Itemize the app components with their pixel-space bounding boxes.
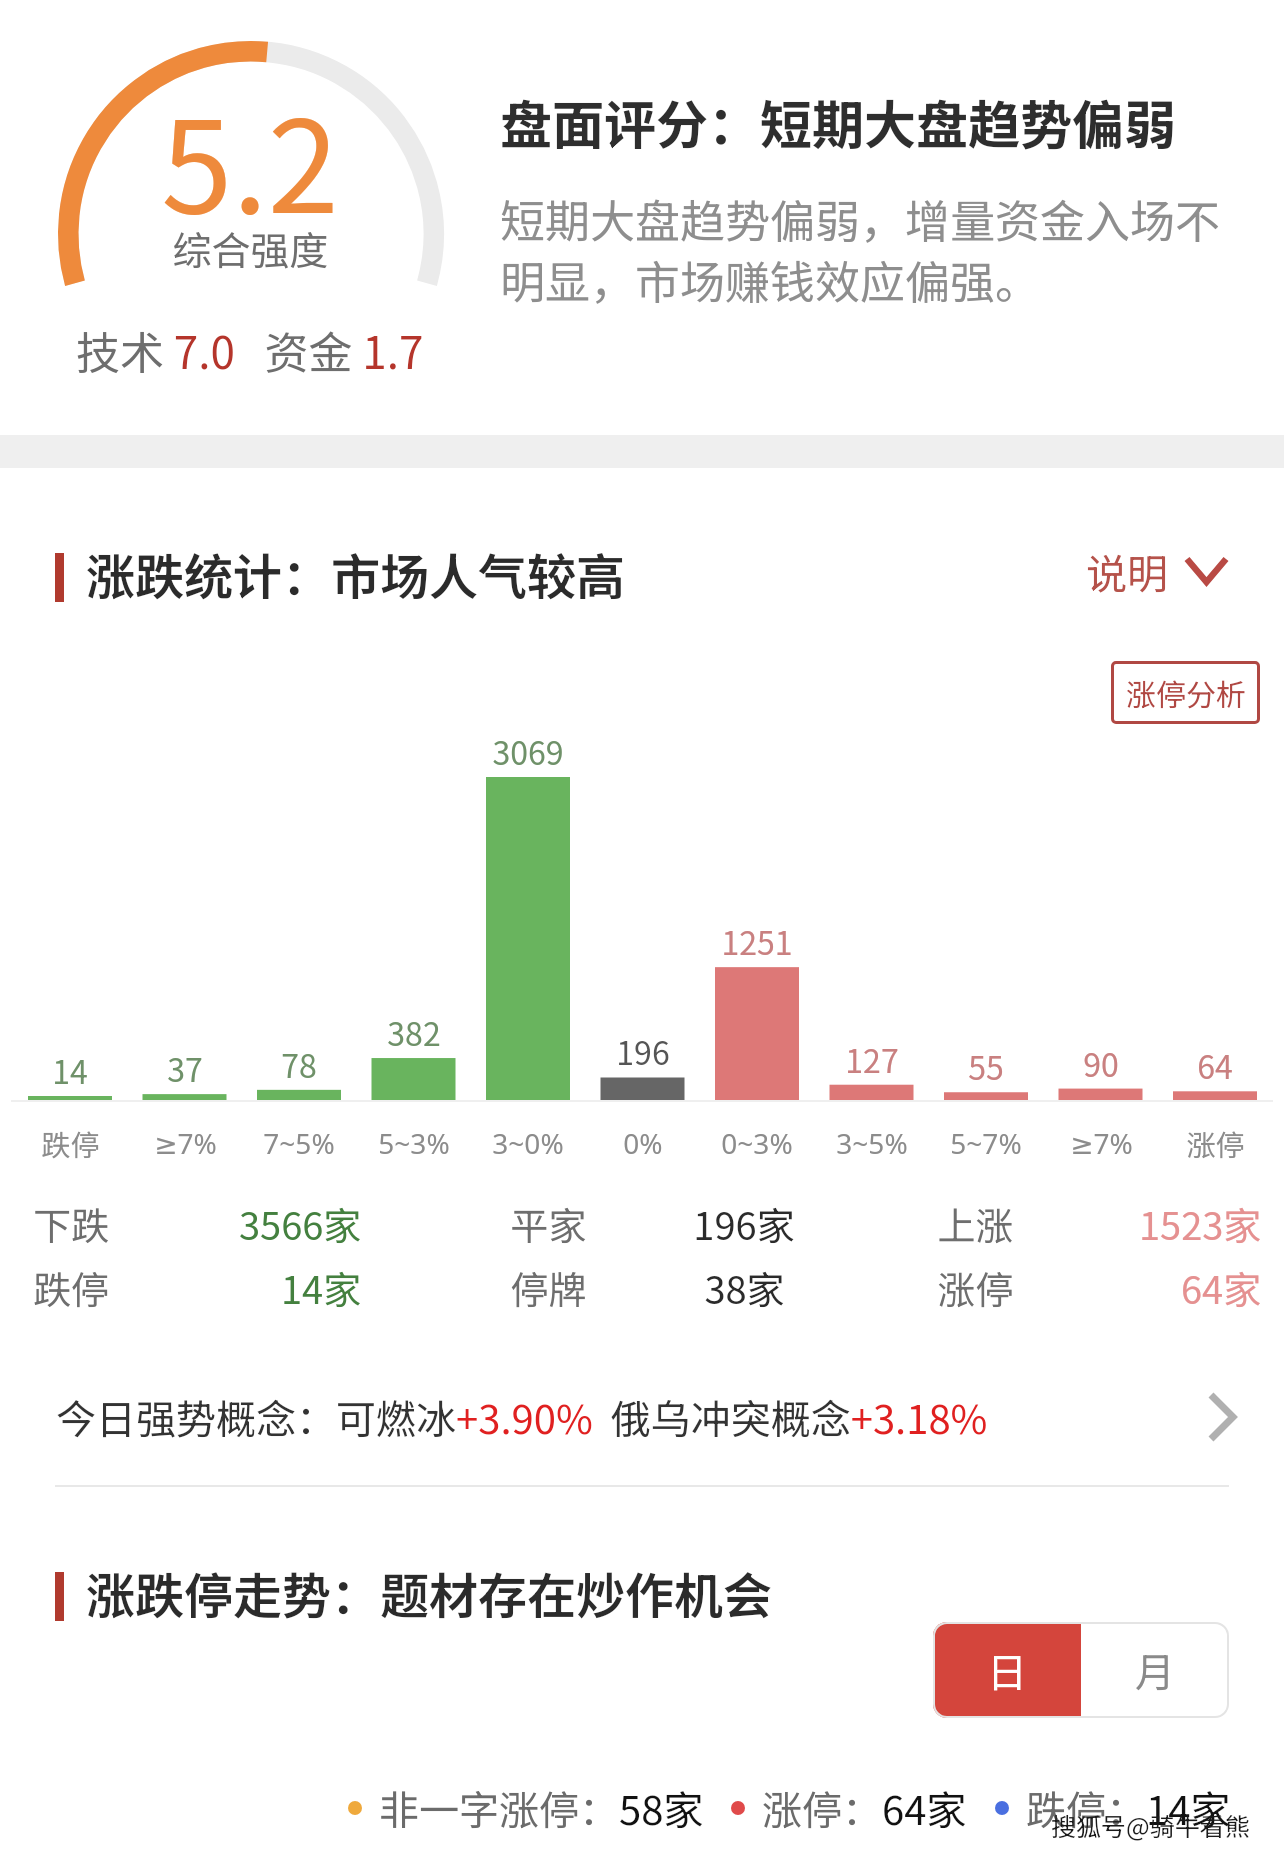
staticText: 78 bbox=[281, 1041, 317, 1087]
staticText: 1251 bbox=[721, 918, 793, 964]
button[interactable]: 今日强势概念：可燃冰+3.90% 俄乌冲突概念+3.18% bbox=[0, 1362, 1284, 1472]
staticText: ≥7% bbox=[1070, 1124, 1133, 1162]
staticText: 月 bbox=[1135, 1641, 1175, 1699]
staticText: 技术 7.0 资金 1.7 bbox=[76, 318, 424, 382]
staticText: ≥7% bbox=[154, 1124, 217, 1162]
staticText: 14家 bbox=[1146, 1779, 1231, 1837]
staticText: 搜狐号@骑牛看熊 bbox=[1051, 1807, 1250, 1843]
staticText: 3566家 bbox=[239, 1196, 362, 1251]
button[interactable]: 月 bbox=[1081, 1622, 1229, 1718]
staticText: 跌停 bbox=[33, 1260, 110, 1315]
staticText: 日 bbox=[987, 1641, 1027, 1699]
staticText: 综合强度 bbox=[172, 220, 329, 276]
staticText: 盘面评分：短期大盘趋势偏弱 bbox=[500, 84, 1177, 159]
staticText: 3~0% bbox=[492, 1124, 564, 1162]
staticText: 0~3% bbox=[721, 1124, 793, 1162]
staticText: 涨停 bbox=[937, 1260, 1014, 1315]
staticText: 涨跌停走势：题材存在炒作机会 bbox=[86, 1557, 773, 1628]
staticText: 127 bbox=[845, 1036, 899, 1082]
staticText: 停牌 bbox=[510, 1260, 587, 1315]
staticText: 非一字涨停： bbox=[379, 1779, 619, 1837]
staticText: 平家 bbox=[510, 1196, 587, 1251]
staticText: 跌停： bbox=[1026, 1779, 1146, 1837]
staticText: 涨停分析 bbox=[1126, 671, 1246, 714]
staticText: 382 bbox=[387, 1009, 441, 1055]
staticText: 说明 bbox=[1086, 541, 1168, 600]
staticText: 3069 bbox=[492, 728, 564, 774]
staticText: 跌停 bbox=[41, 1122, 100, 1164]
staticText: 5.2 bbox=[161, 65, 339, 250]
staticText: 14 bbox=[52, 1047, 88, 1093]
staticText: 下跌 bbox=[33, 1196, 110, 1251]
staticText: 196家 bbox=[693, 1196, 795, 1251]
staticText: 上涨 bbox=[937, 1196, 1014, 1251]
staticText: 55 bbox=[968, 1043, 1004, 1089]
staticText: 64 bbox=[1197, 1042, 1233, 1088]
staticText: 涨停 bbox=[1186, 1122, 1245, 1164]
staticText: 5~7% bbox=[950, 1124, 1022, 1162]
staticText: 90 bbox=[1083, 1040, 1119, 1086]
staticText: 196 bbox=[616, 1028, 670, 1074]
staticText: 64家 bbox=[882, 1779, 967, 1837]
staticText: 5~3% bbox=[378, 1124, 450, 1162]
staticText: 3~5% bbox=[836, 1124, 908, 1162]
staticText: 58家 bbox=[619, 1779, 704, 1837]
staticText: 涨跌统计：市场人气较高 bbox=[86, 538, 626, 609]
staticText: 64家 bbox=[1181, 1260, 1262, 1315]
staticText: 涨停： bbox=[762, 1779, 882, 1837]
staticText: 1523家 bbox=[1139, 1196, 1262, 1251]
staticText: 今日强势概念：可燃冰+3.90% 俄乌冲突概念+3.18% bbox=[56, 1388, 988, 1446]
staticText: 38家 bbox=[704, 1260, 785, 1315]
staticText: 7~5% bbox=[263, 1124, 335, 1162]
staticText: 14家 bbox=[281, 1260, 362, 1315]
button[interactable]: 日 bbox=[933, 1622, 1081, 1718]
staticText: 37 bbox=[167, 1045, 203, 1091]
button[interactable]: 说明 bbox=[1074, 529, 1241, 612]
staticText: 短期大盘趋势偏弱，增量资金入场不明显，市场赚钱效应偏强。 bbox=[500, 186, 1248, 312]
button[interactable]: 涨停分析 bbox=[1111, 661, 1260, 724]
staticText: 0% bbox=[623, 1124, 663, 1162]
